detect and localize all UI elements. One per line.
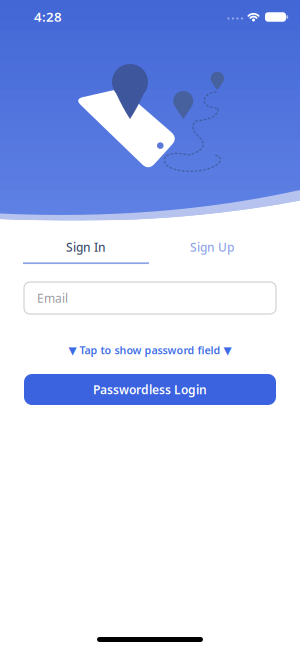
button[interactable]: Passwordless Login xyxy=(24,374,276,405)
staticText: ▼ Tap to show password field ▼ xyxy=(68,343,231,357)
staticText: 4:28 xyxy=(34,8,62,25)
staticText: Passwordless Login xyxy=(93,381,207,397)
staticText: Sign Up xyxy=(190,239,234,255)
button[interactable]: Sign Up xyxy=(149,232,275,262)
button[interactable]: Email xyxy=(24,282,276,314)
button[interactable]: Sign In xyxy=(23,232,149,262)
staticText: Email xyxy=(37,290,68,306)
button[interactable]: ▼ Tap to show password field ▼ xyxy=(35,340,265,360)
staticText: Sign In xyxy=(66,239,106,255)
